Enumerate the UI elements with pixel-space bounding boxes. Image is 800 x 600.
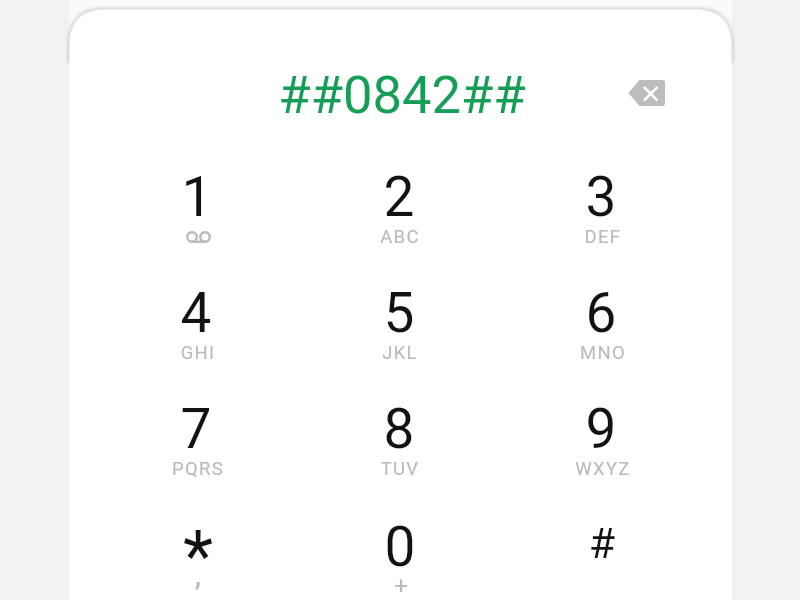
button[interactable]: Key 8 TUV — [299, 376, 499, 490]
staticText: 6 — [451, 281, 751, 345]
staticText: , — [48, 555, 348, 592]
staticText: DEF — [453, 226, 753, 248]
staticText: JKL — [250, 342, 550, 364]
button[interactable]: Key 7 PQRS — [96, 376, 296, 490]
button[interactable]: Key 2 ABC — [299, 144, 499, 258]
staticText: WXYZ — [453, 458, 753, 480]
button[interactable]: Key 3 DEF — [501, 144, 701, 258]
button[interactable]: Key # — [501, 493, 701, 600]
button[interactable]: Key 1 — [96, 144, 296, 258]
staticText: 1 — [47, 165, 347, 229]
button[interactable]: Key 5 JKL — [299, 260, 499, 374]
staticText: TUV — [250, 458, 550, 480]
staticText: # — [452, 518, 752, 568]
button[interactable]: Key 0 + — [299, 493, 499, 600]
staticText: 4 — [46, 281, 346, 345]
staticText: 8 — [249, 397, 549, 461]
staticText: 9 — [451, 397, 751, 461]
staticText: ABC — [250, 226, 550, 248]
button[interactable]: Dialled number ##0842## — [120, 58, 690, 130]
staticText: PQRS — [48, 458, 348, 480]
staticText: ##0842## — [252, 64, 552, 125]
staticText: 0 — [250, 515, 550, 579]
button[interactable]: Key 9 WXYZ — [501, 376, 701, 490]
button[interactable]: Key 6 MNO — [501, 260, 701, 374]
staticText: 2 — [249, 165, 549, 229]
staticText: 3 — [451, 165, 751, 229]
button[interactable]: Backspace — [614, 61, 678, 125]
staticText: * — [48, 515, 348, 597]
button[interactable]: Key * , — [96, 493, 296, 600]
staticText: 7 — [46, 397, 346, 461]
staticText: + — [251, 572, 551, 600]
staticText: GHI — [48, 342, 348, 364]
staticText: MNO — [453, 342, 753, 364]
button[interactable]: Key 4 GHI — [96, 260, 296, 374]
staticText: 5 — [249, 281, 549, 345]
